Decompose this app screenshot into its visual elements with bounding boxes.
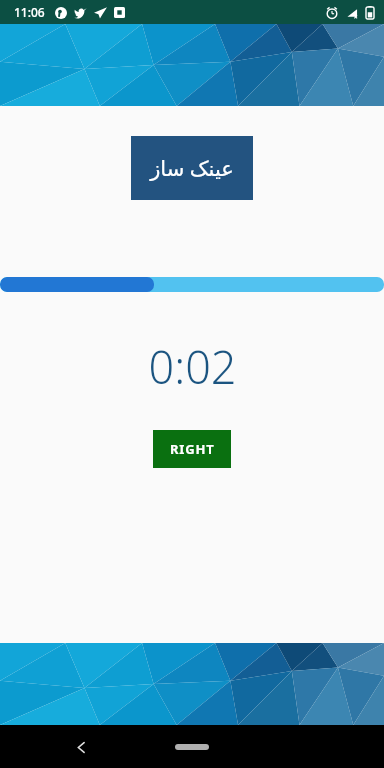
button[interactable]: عینک ساز	[131, 136, 253, 200]
staticText: 11:06	[14, 4, 45, 20]
button[interactable]: Back	[68, 734, 94, 760]
staticText: RIGHT	[170, 440, 215, 458]
button[interactable]: Home	[162, 736, 222, 758]
button[interactable]: RIGHT	[153, 430, 231, 468]
staticText: 0:02	[148, 336, 237, 397]
staticText: عینک ساز	[150, 154, 234, 183]
